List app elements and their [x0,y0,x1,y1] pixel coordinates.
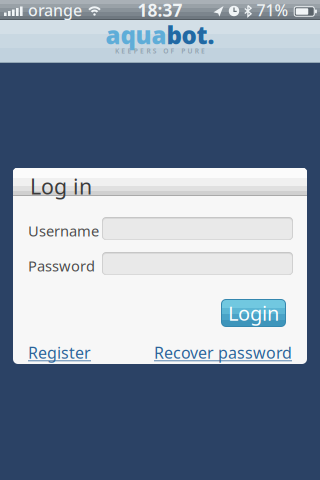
button[interactable]: Recover password [154,342,292,363]
staticText: Login [228,300,279,326]
staticText: Password [28,256,95,275]
staticText: Log in [30,172,92,200]
button[interactable]: Register [28,342,91,363]
staticText: bot. [166,19,214,51]
staticText: orange [28,0,82,21]
staticText: 18:37 [137,0,182,21]
staticText: Recover password [154,342,292,363]
button[interactable]: Username [102,217,293,240]
staticText: Register [28,342,91,363]
staticText: 71% [256,0,288,21]
staticText: aqua [105,19,166,51]
staticText: Username [28,221,99,240]
staticText: KEEPERS OF PURE [115,47,205,55]
button[interactable]: Login [221,299,286,327]
button[interactable]: Password [102,252,293,275]
